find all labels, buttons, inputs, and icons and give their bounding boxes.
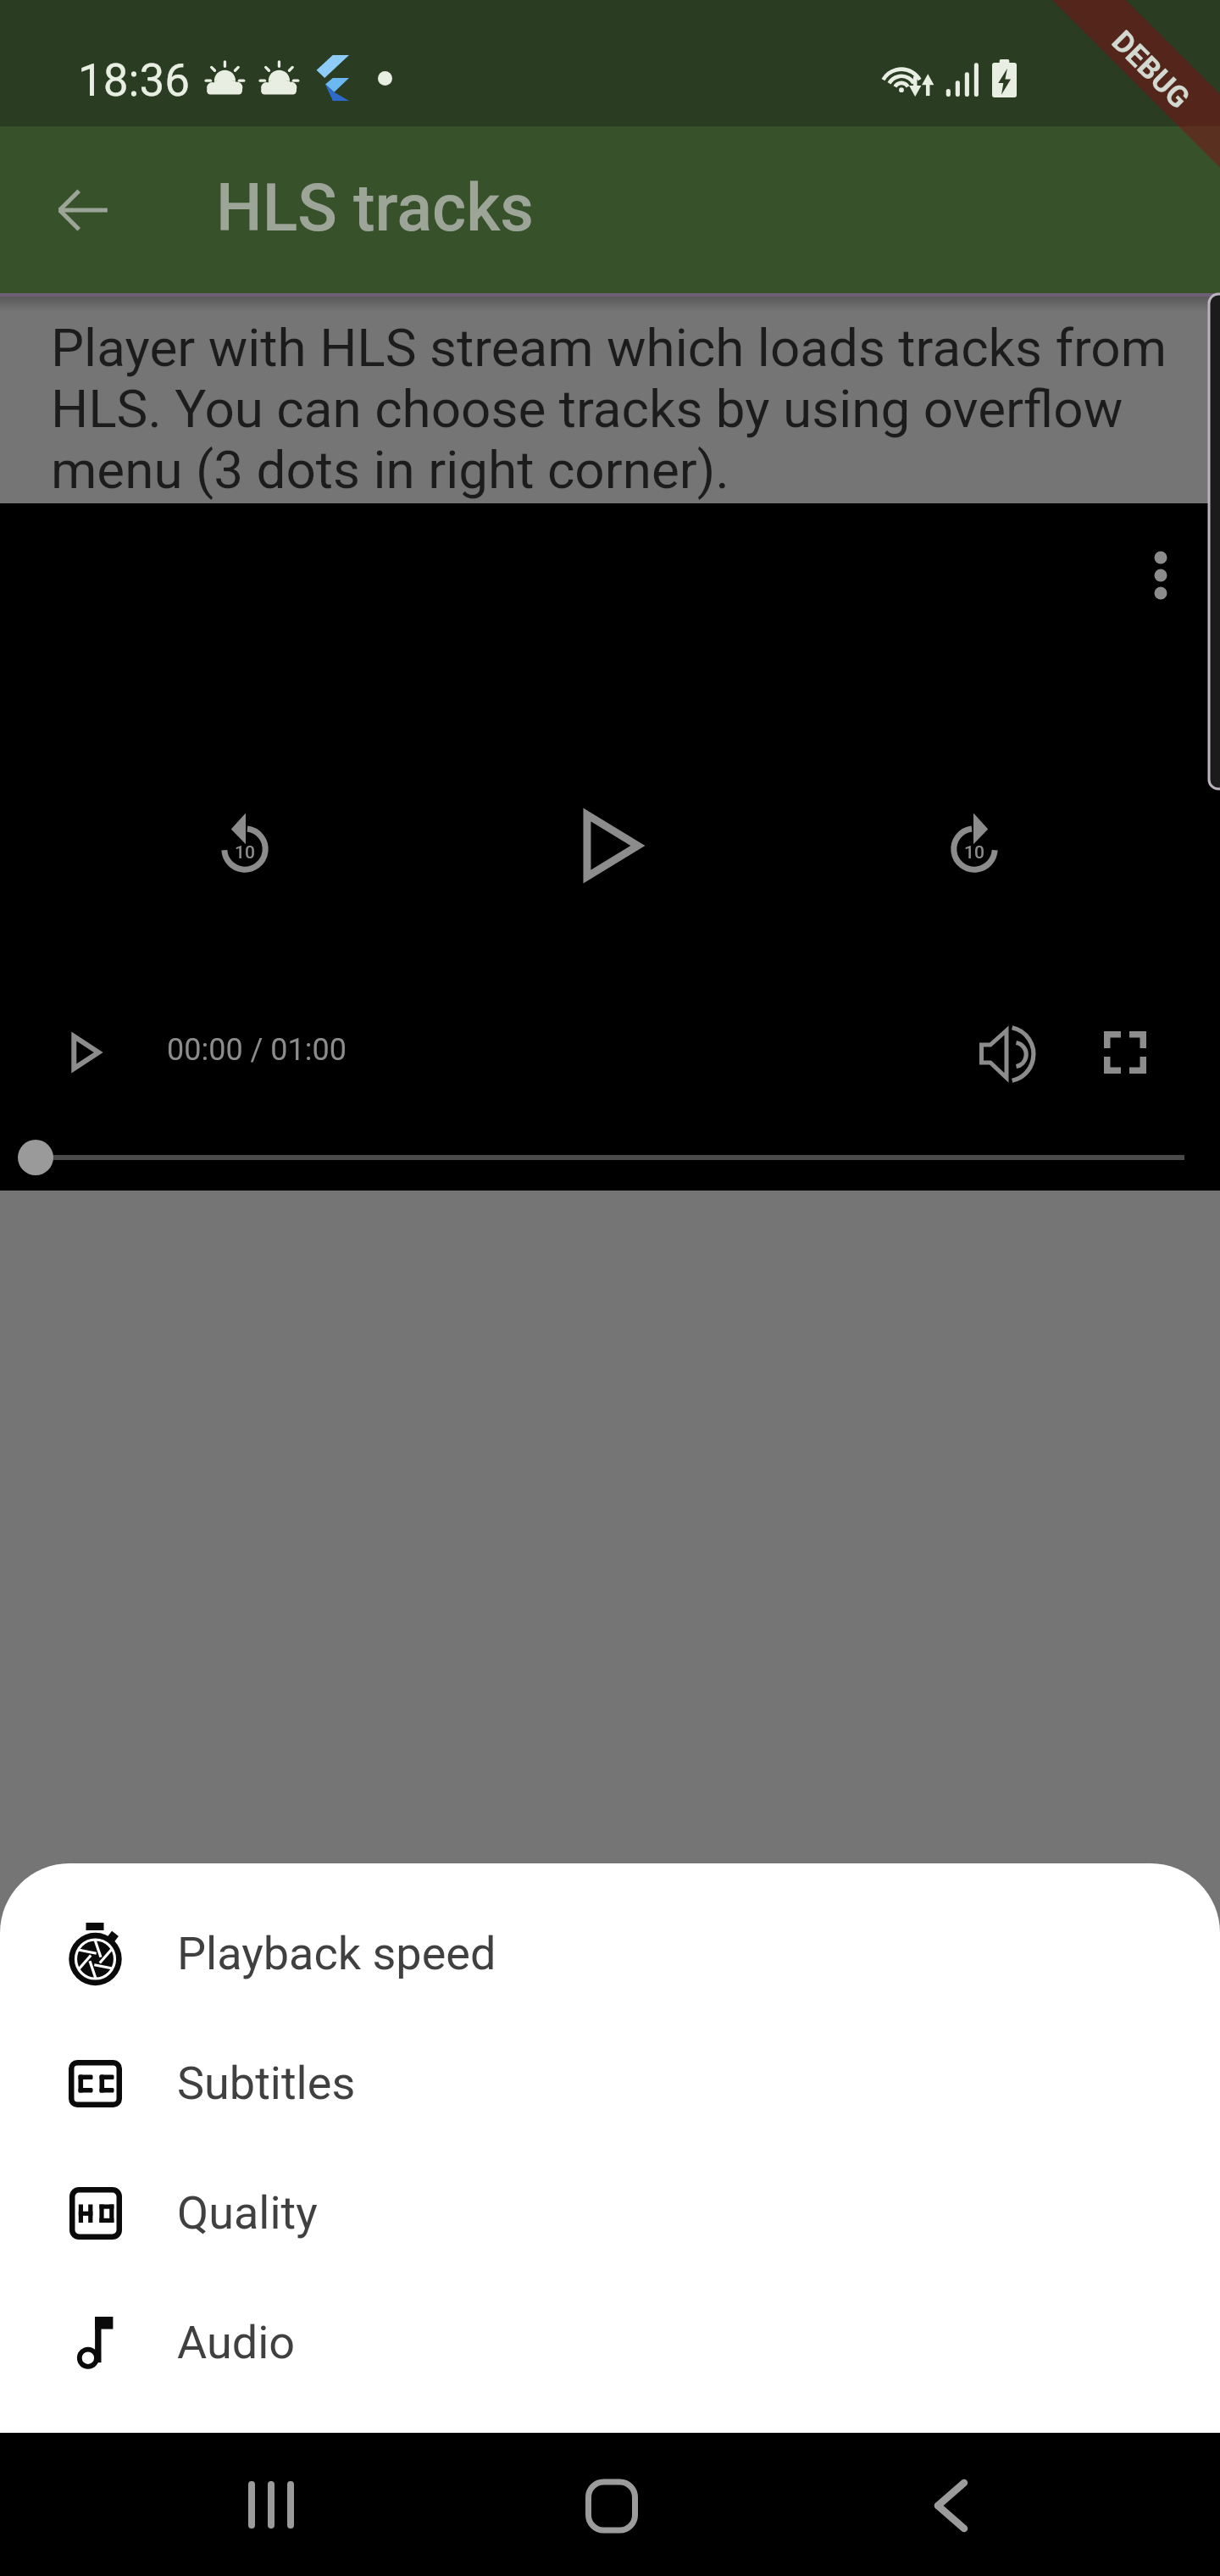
staticText: 18:36 [78,54,190,107]
button[interactable]: Audio [0,2278,1220,2407]
button[interactable]: Back [36,163,130,258]
button[interactable]: Home [535,2433,687,2576]
button[interactable]: Back [874,2433,1027,2576]
button[interactable]: Subtitles [0,2018,1220,2148]
staticText: Player with HLS stream which loads track… [51,317,1178,501]
button[interactable]: Forward 10 seconds [915,786,1034,905]
staticText: DEBUG [1105,24,1196,116]
staticText: 10 [964,842,984,863]
button[interactable]: Play [36,1002,137,1103]
staticText: 00:00 / 01:00 [167,1032,347,1068]
staticText: Quality [177,2186,318,2240]
button[interactable]: Playback speed [0,1889,1220,2018]
staticText: Playback speed [177,1927,496,1980]
staticText: HLS tracks [216,170,534,247]
button[interactable]: Recent apps [195,2433,347,2576]
staticText: Audio [177,2316,296,2369]
button[interactable]: Mute [957,1004,1058,1106]
button[interactable]: Play [554,786,673,905]
button[interactable]: Replay 10 seconds [186,786,304,905]
button[interactable]: Fullscreen [1074,1002,1176,1103]
staticText: Subtitles [177,2057,356,2110]
staticText: 10 [235,842,255,863]
button[interactable]: Quality [0,2148,1220,2278]
button[interactable]: More options [1110,525,1212,626]
